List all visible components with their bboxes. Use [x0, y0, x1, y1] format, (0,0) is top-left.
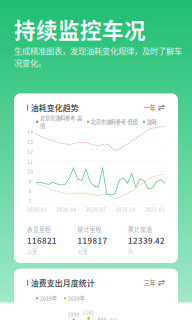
staticText: 三年 [144, 278, 156, 287]
staticText: 9 [28, 177, 31, 185]
staticText: 公里 [27, 248, 37, 255]
staticText: 2020-10 [115, 206, 135, 213]
staticText: 116821 [27, 234, 57, 246]
staticText: 1099 [68, 311, 80, 318]
staticText: 北京市油料参考-低值 [91, 118, 138, 126]
staticText: 升 [128, 248, 133, 255]
staticText: 持续监控车况 [14, 13, 146, 45]
staticText: 油耗 [147, 118, 157, 126]
staticText: 13 [27, 138, 33, 145]
button[interactable]: 一年 [144, 103, 165, 112]
staticText: 11 [27, 157, 33, 165]
staticText: 一年 [144, 103, 156, 112]
staticText: 899 [98, 316, 107, 320]
staticText: 油耗变化趋势 [31, 102, 79, 113]
staticText: 8 [28, 187, 31, 195]
staticText: 统计里程 [77, 225, 101, 233]
staticText: 10 [27, 167, 33, 175]
staticText: 14 [27, 128, 33, 135]
button[interactable]: 三年 [144, 278, 165, 287]
staticText: 119817 [77, 234, 107, 246]
staticText: 12339.42 [128, 234, 165, 246]
staticText: 2019年 [40, 294, 57, 302]
staticText: 生成精准图表，发现油耗变化规律，及时了解车况变化。 [14, 45, 182, 69]
staticText: 1141 [83, 309, 95, 316]
staticText: 表显里程 [27, 225, 51, 233]
staticText: 北京市油料参考-高值 [40, 114, 82, 129]
staticText: 2020-07 [86, 206, 106, 213]
staticText: 2020-04 [56, 206, 76, 213]
staticText: 2020年 [68, 294, 85, 302]
staticText: 公里 [77, 248, 87, 255]
staticText: 881 [110, 317, 119, 320]
staticText: 7 [28, 197, 31, 205]
staticText: 2020-01 [27, 206, 47, 213]
staticText: 累计加油 [128, 225, 152, 233]
staticText: 2021-01 [145, 206, 165, 213]
staticText: 12 [27, 148, 33, 155]
staticText: 油费支出月度统计 [31, 277, 95, 288]
